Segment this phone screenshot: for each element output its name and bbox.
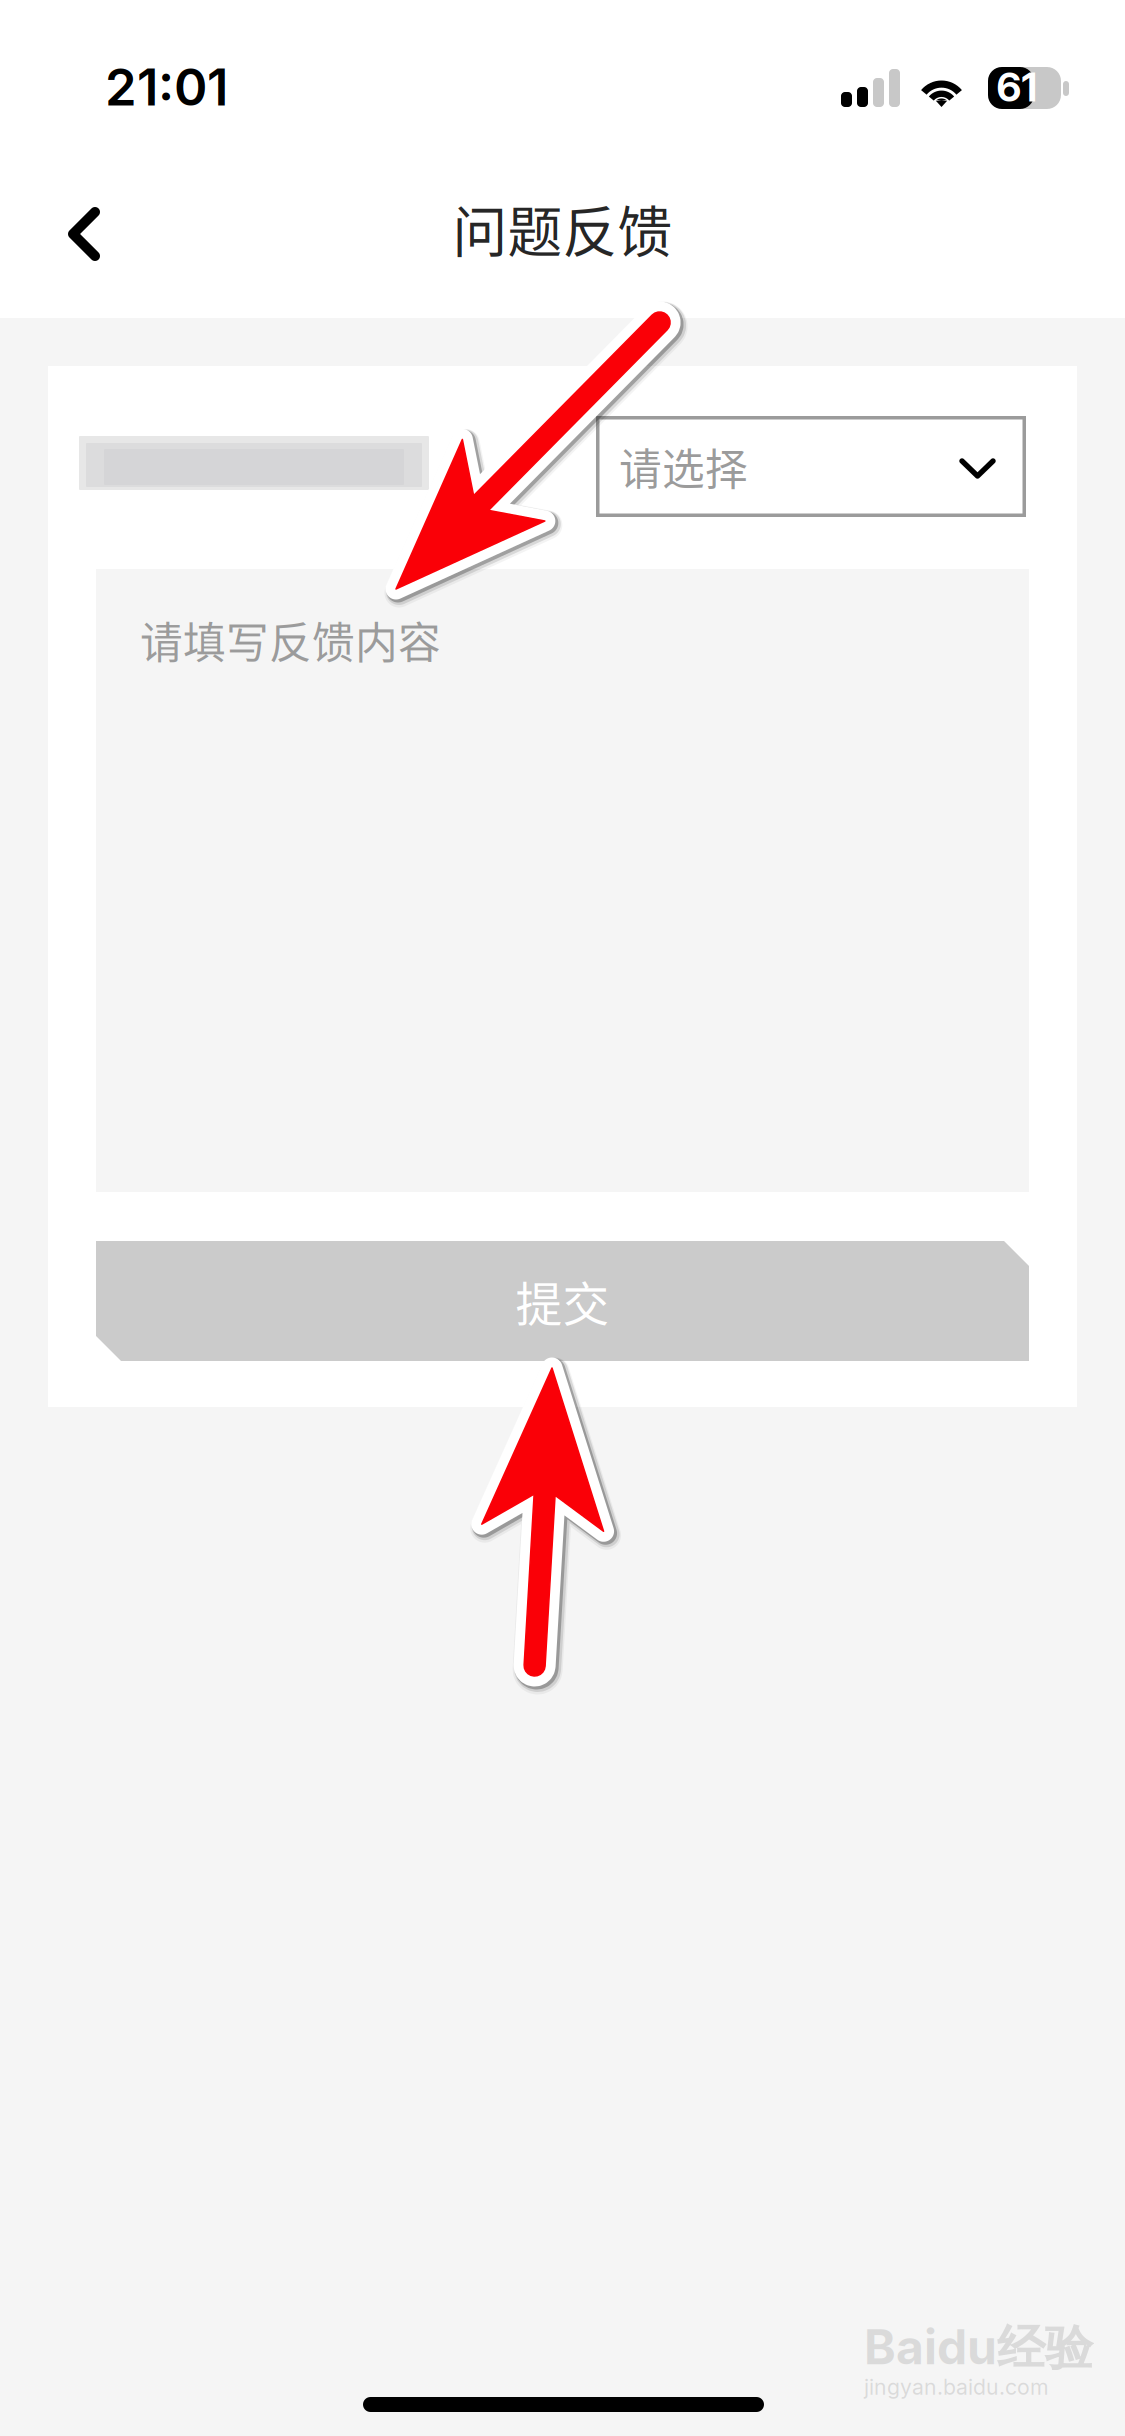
staticText: jingyan.baidu.com bbox=[864, 2374, 1049, 2400]
button[interactable]: Back bbox=[28, 178, 140, 290]
staticText: 请填写反馈内容 bbox=[140, 609, 441, 671]
button[interactable]: 请选择 bbox=[596, 416, 1026, 517]
staticText: 提交 bbox=[515, 1267, 609, 1335]
button[interactable]: 提交 bbox=[96, 1241, 1029, 1361]
staticText: 问题反馈 bbox=[452, 188, 672, 268]
staticText: 21:01 bbox=[105, 56, 228, 118]
staticText: 61 bbox=[996, 63, 1037, 111]
button[interactable]: 请填写反馈内容 bbox=[96, 569, 1029, 1192]
staticText: Baidu经验 bbox=[864, 2318, 1093, 2378]
staticText: 请选择 bbox=[619, 436, 748, 497]
